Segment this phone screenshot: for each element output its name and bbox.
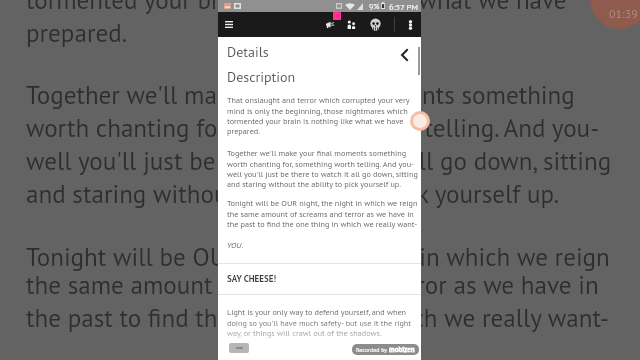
staticText: 01:39 bbox=[609, 6, 638, 22]
button[interactable]: Details bbox=[218, 41, 421, 63]
staticText: Details bbox=[227, 43, 269, 61]
staticText: and staring without the ability to pick … bbox=[26, 177, 560, 209]
staticText: mobizen bbox=[389, 345, 415, 354]
staticText: the past to find the one thing in which … bbox=[26, 301, 610, 333]
button[interactable]: Back bbox=[229, 343, 249, 353]
button[interactable]: Participants bbox=[342, 14, 360, 35]
button[interactable]: Profile bbox=[365, 12, 385, 37]
staticText: Together we'll make your final moments s… bbox=[26, 78, 575, 110]
staticText: worth chanting for, something worth tell… bbox=[26, 111, 600, 143]
staticText: That onslaught and terror which corrupte… bbox=[227, 95, 410, 137]
staticText: Tonight will be OUR night, the night in … bbox=[227, 198, 418, 230]
staticText: Description bbox=[227, 68, 296, 86]
staticText: 9% bbox=[369, 1, 380, 11]
staticText: tormented your brain is nothing like wha… bbox=[26, 0, 567, 15]
button[interactable]: More options bbox=[401, 14, 419, 35]
button[interactable]: Timer bbox=[590, 0, 640, 29]
staticText: Tonight will be OUR night, the night in … bbox=[26, 240, 610, 272]
staticText: Recorded by bbox=[356, 346, 389, 354]
staticText: Light is your only way to defend yoursel… bbox=[227, 307, 412, 339]
staticText: the same amount of screams and terror as… bbox=[26, 268, 599, 300]
staticText: SAY CHEESE! bbox=[227, 273, 277, 285]
button[interactable]: Announcements bbox=[321, 14, 339, 35]
staticText: YOU. bbox=[227, 240, 244, 251]
staticText: well you'll just be there to watch it al… bbox=[26, 144, 612, 176]
button[interactable]: Timer bbox=[410, 111, 430, 131]
staticText: prepared. bbox=[26, 16, 128, 48]
staticText: 6:57 PM bbox=[389, 1, 419, 12]
button[interactable]: Navigation menu bbox=[218, 12, 239, 37]
staticText: Together we'll make your final moments s… bbox=[227, 148, 418, 190]
